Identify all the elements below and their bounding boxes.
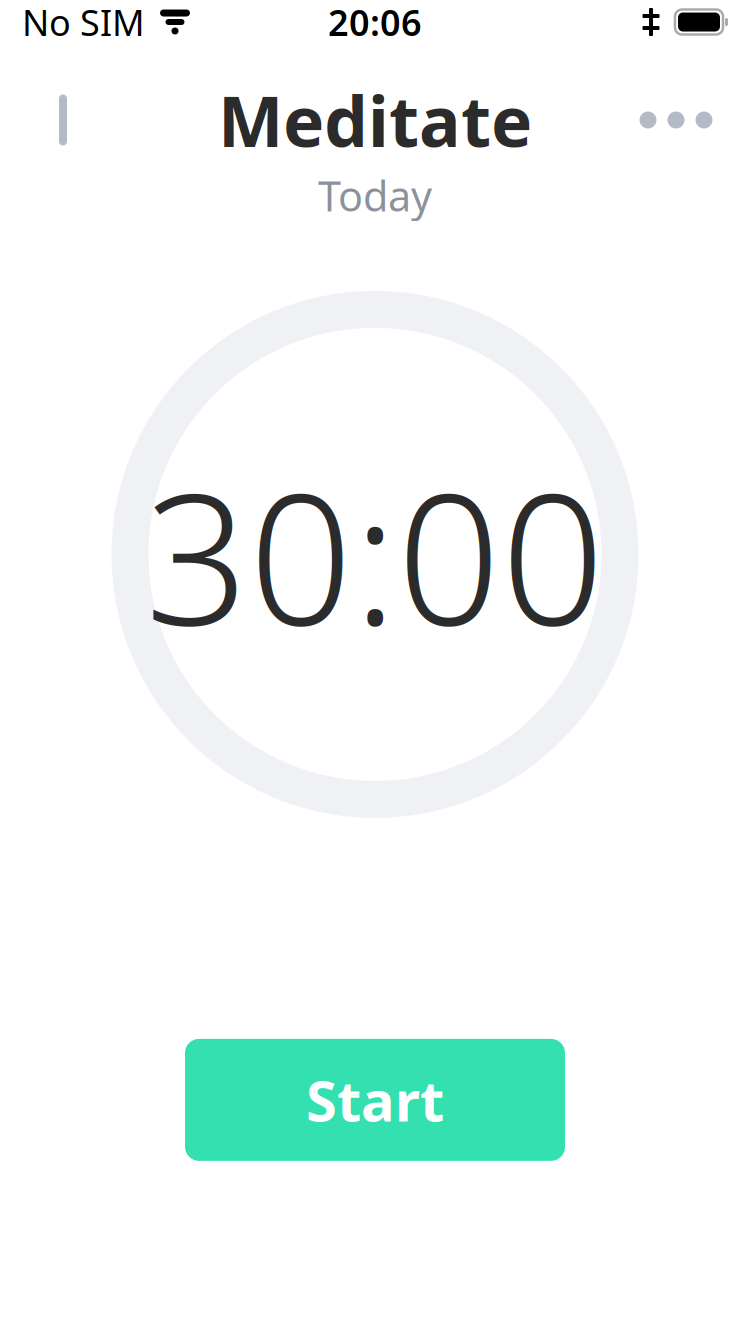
staticText: No SIM	[22, 0, 145, 46]
staticText: Today	[318, 168, 432, 223]
button[interactable]: Start	[185, 1039, 565, 1161]
staticText: 20:06	[328, 0, 422, 46]
staticText: Start	[306, 1063, 444, 1137]
staticText: 30:00	[145, 434, 605, 675]
button[interactable]: More options	[628, 78, 724, 162]
button[interactable]: Back	[26, 78, 110, 162]
staticText: Meditate	[218, 74, 532, 166]
